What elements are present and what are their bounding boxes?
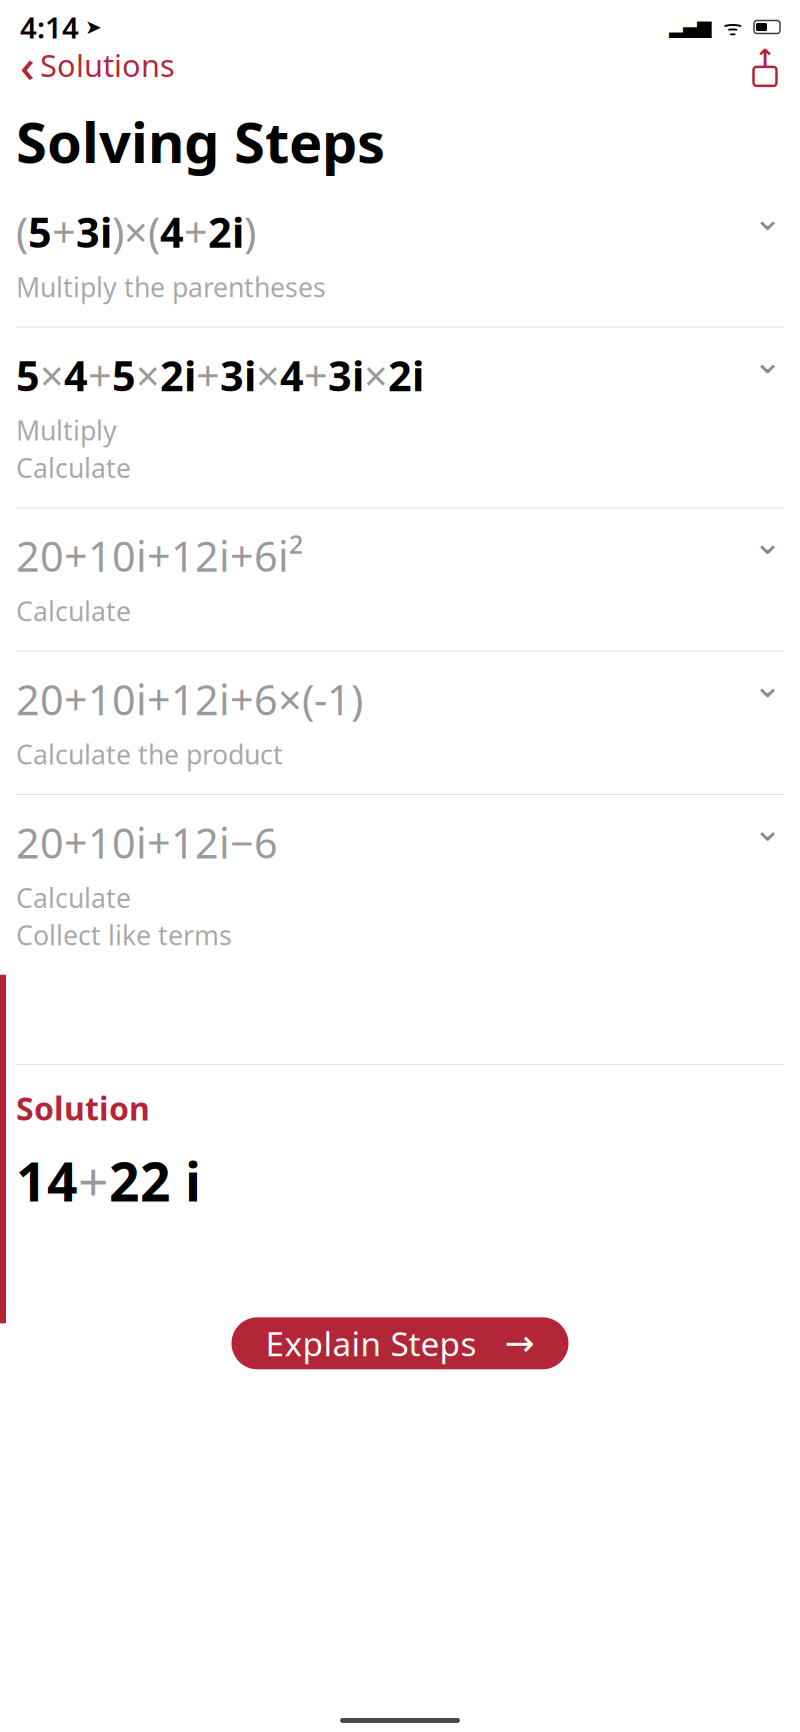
staticText: + — [52, 204, 76, 259]
button[interactable]: Share — [742, 48, 788, 82]
staticText: 5 — [16, 348, 40, 403]
staticText: 2i — [388, 348, 424, 403]
staticText: ⌄ — [753, 666, 782, 705]
staticText: 14 — [16, 1145, 78, 1216]
staticText: + — [64, 528, 88, 583]
staticText: × — [136, 348, 160, 403]
staticText: → — [504, 1323, 534, 1364]
staticText: 20 — [16, 815, 64, 870]
staticText: Calculate — [16, 880, 131, 915]
staticText: × — [40, 348, 64, 403]
staticText: 12i — [171, 528, 230, 583]
staticText: + — [88, 348, 112, 403]
staticText: Multiply — [16, 413, 117, 448]
staticText: 22 i — [109, 1145, 201, 1216]
staticText: 20 — [16, 672, 64, 727]
staticText: Calculate — [16, 450, 131, 485]
staticText: Collect like terms — [16, 917, 232, 953]
staticText: + — [64, 672, 88, 727]
staticText: ▂▄▆ — [669, 16, 711, 38]
staticText: 5 — [28, 204, 52, 259]
staticText: + — [64, 815, 88, 870]
staticText: 4:14 — [20, 7, 79, 46]
button[interactable]: 20 — [0, 652, 800, 794]
staticText: 20 — [16, 528, 64, 583]
staticText: ⌄ — [753, 342, 782, 381]
staticText: ⌄ — [753, 198, 782, 238]
staticText: 2i — [160, 348, 196, 403]
staticText: + — [147, 815, 171, 870]
staticText: 6 — [254, 672, 278, 727]
staticText: ⌄ — [753, 809, 782, 848]
staticText: 6i² — [254, 528, 303, 583]
staticText: 3i — [220, 348, 256, 403]
button[interactable]: 5 — [0, 328, 800, 507]
staticText: ➤ — [79, 16, 102, 38]
button[interactable]: 20 — [0, 795, 800, 975]
staticText: 5 — [112, 348, 136, 403]
staticText: + — [147, 672, 171, 727]
staticText: ⌄ — [753, 522, 782, 562]
staticText: Solution — [16, 1087, 150, 1129]
staticText: + — [78, 1145, 109, 1216]
staticText: ( — [16, 204, 28, 259]
staticText: × — [256, 348, 280, 403]
staticText: 4 — [160, 204, 184, 259]
staticText: + — [304, 348, 328, 403]
staticText: × — [278, 672, 302, 727]
staticText: ‹ — [20, 35, 35, 95]
staticText: Calculate — [16, 593, 131, 629]
staticText: ↑ — [754, 44, 775, 73]
button[interactable]: ( — [0, 184, 800, 327]
staticText: ) — [244, 204, 256, 259]
staticText: 12i — [171, 815, 230, 870]
staticText: Multiply the parentheses — [16, 269, 326, 305]
staticText: 6 — [254, 815, 278, 870]
staticText: Solving Steps — [16, 104, 385, 178]
button[interactable]: ‹ — [12, 29, 183, 101]
staticText: 10i — [88, 528, 147, 583]
staticText: + — [230, 528, 254, 583]
staticText: + — [196, 348, 220, 403]
staticText: 12i — [171, 672, 230, 727]
staticText: × — [364, 348, 388, 403]
staticText: 4 — [64, 348, 88, 403]
staticText: 2i — [208, 204, 244, 259]
staticText: 3i — [76, 204, 112, 259]
staticText: + — [184, 204, 208, 259]
staticText: 10i — [88, 672, 147, 727]
staticText: 10i — [88, 815, 147, 870]
staticText: + — [147, 528, 171, 583]
staticText: Solutions — [40, 45, 175, 85]
button[interactable]: 20 — [0, 508, 800, 651]
staticText: 3i — [328, 348, 364, 403]
button[interactable]: Explain Steps — [231, 1317, 568, 1369]
staticText: ) — [112, 204, 124, 259]
staticText: ᯤ — [711, 13, 754, 41]
staticText: ( — [148, 204, 160, 259]
staticText: (-1) — [302, 672, 363, 727]
staticText: − — [230, 815, 254, 870]
staticText: Explain Steps — [265, 1321, 476, 1365]
staticText: Calculate the product — [16, 737, 283, 772]
staticText: × — [124, 204, 148, 259]
staticText: 4 — [280, 348, 304, 403]
staticText: + — [230, 672, 254, 727]
